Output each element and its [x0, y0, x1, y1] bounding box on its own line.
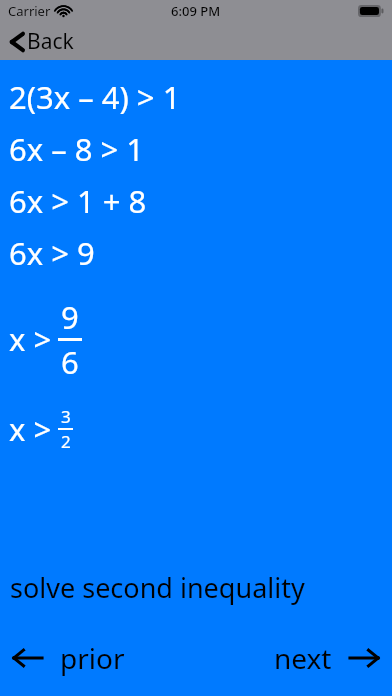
staticText: 6x > 9: [9, 232, 95, 274]
staticText: 6x – 8 > 1: [9, 128, 145, 170]
staticText: prior: [60, 639, 125, 677]
staticText: 9: [61, 296, 79, 338]
staticText: 2: [61, 430, 71, 453]
staticText: x >: [9, 408, 52, 450]
staticText: Carrier: [8, 2, 51, 20]
staticText: next: [274, 639, 332, 677]
button[interactable]: Previous: [0, 633, 139, 683]
staticText: 6: [61, 341, 79, 383]
button[interactable]: next: [260, 633, 392, 683]
staticText: 2(3x – 4) > 1: [9, 76, 181, 118]
staticText: Back: [27, 27, 74, 56]
other: Next: [348, 645, 380, 671]
staticText: 6x > 1 + 8: [9, 180, 147, 222]
other: Previous: [12, 645, 44, 671]
staticText: 3: [61, 405, 71, 428]
staticText: solve second inequality: [10, 569, 305, 606]
button[interactable]: Back: [0, 23, 88, 60]
other: Back: [10, 30, 24, 54]
staticText: 6:09 PM: [171, 2, 221, 20]
staticText: x >: [9, 318, 52, 360]
